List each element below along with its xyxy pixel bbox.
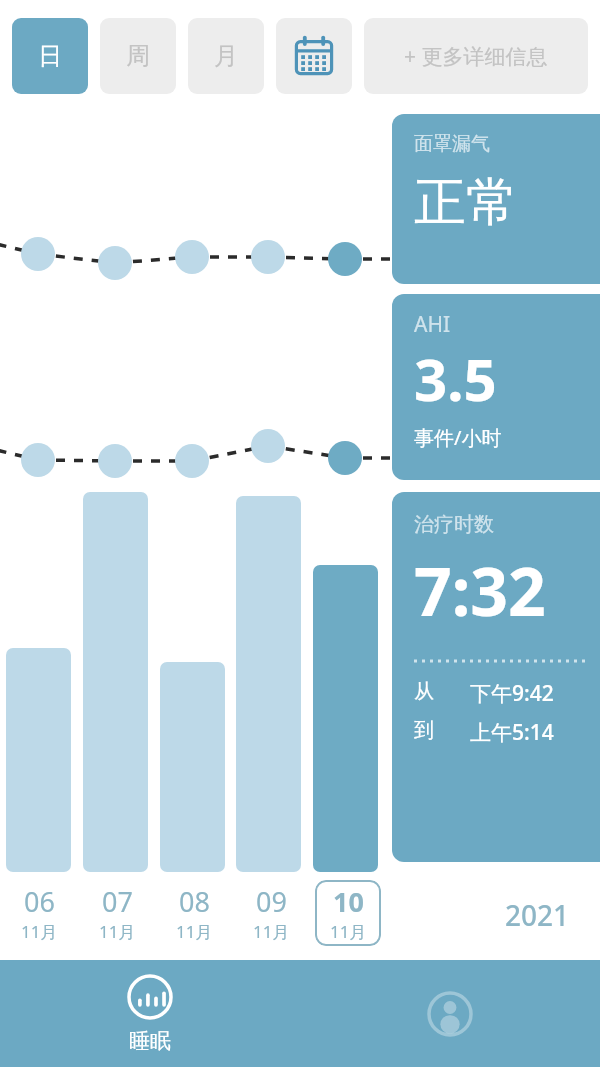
staticText: 治疗时数 [414, 512, 494, 537]
staticText: 11月 [176, 920, 213, 943]
staticText: 11月 [253, 920, 290, 943]
button[interactable]: + 更多详细信息 [364, 18, 588, 94]
button[interactable]: 09 [238, 880, 304, 946]
staticText: 睡眠 [129, 1028, 171, 1054]
staticText: 面罩漏气 [414, 132, 490, 156]
button[interactable]: 睡眠 [0, 960, 300, 1067]
staticText: 日 [38, 41, 62, 71]
button[interactable]: 07 [84, 880, 150, 946]
staticText: 下午9:42 [470, 679, 554, 708]
staticText: 3.5 [414, 339, 497, 418]
staticText: AHI [414, 310, 451, 339]
staticText: 07 [102, 883, 133, 920]
staticText: 06 [24, 883, 55, 920]
button[interactable]: 10 [315, 880, 381, 946]
staticText: 7:32 [414, 545, 546, 635]
staticText: 08 [179, 883, 210, 920]
staticText: 2021 [505, 896, 570, 934]
button[interactable]: Calendar [276, 18, 352, 94]
staticText: 正常 [414, 170, 518, 236]
staticText: 月 [214, 41, 238, 71]
staticText: 11月 [99, 920, 136, 943]
staticText: 事件/小时 [414, 424, 502, 451]
staticText: 从 [414, 679, 434, 704]
button[interactable]: 06 [6, 880, 72, 946]
button[interactable]: 治疗时数 [392, 492, 600, 862]
staticText: + 更多详细信息 [404, 42, 548, 71]
button[interactable]: 周 [100, 18, 176, 94]
button[interactable]: 面罩漏气 [392, 114, 600, 284]
button[interactable]: 月 [188, 18, 264, 94]
staticText: 上午5:14 [470, 718, 554, 747]
staticText: 11月 [21, 920, 58, 943]
staticText: 周 [126, 41, 150, 71]
button[interactable]: 08 [161, 880, 227, 946]
button[interactable]: 日 [12, 18, 88, 94]
button[interactable]: AHI [392, 294, 600, 480]
staticText: 11月 [330, 920, 367, 943]
button[interactable]: Profile [300, 960, 600, 1067]
staticText: 到 [414, 718, 434, 743]
staticText: 09 [256, 883, 287, 920]
staticText: 10 [333, 883, 364, 920]
